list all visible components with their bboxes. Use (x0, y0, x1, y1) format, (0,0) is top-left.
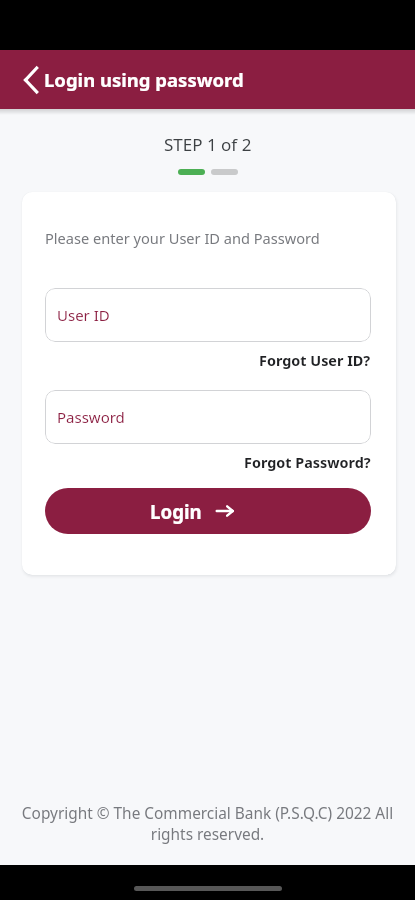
button[interactable]: Forgot User ID? (259, 351, 371, 371)
staticText: Login (150, 499, 202, 524)
button[interactable]: Forgot Password? (244, 453, 371, 473)
staticText: STEP 1 of 2 (164, 133, 252, 156)
staticText: Please enter your User ID and Password (45, 228, 320, 248)
staticText: Password (57, 407, 125, 427)
staticText: Login using password (44, 67, 244, 92)
button[interactable]: Back (15, 64, 46, 95)
staticText: User ID (57, 305, 110, 325)
button[interactable]: Login (45, 488, 371, 534)
button[interactable]: Password (45, 390, 371, 444)
button[interactable]: User ID (45, 288, 371, 342)
staticText: Copyright © The Commercial Bank (P.S.Q.C… (8, 803, 407, 845)
